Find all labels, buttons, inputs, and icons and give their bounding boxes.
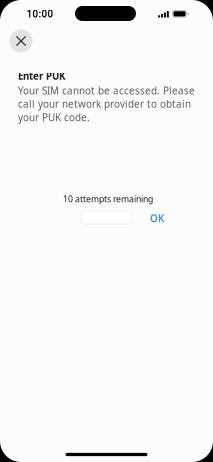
staticText: OK	[150, 212, 164, 225]
staticText: 10 attempts remaining	[63, 193, 153, 205]
button[interactable]: Close	[9, 29, 32, 52]
button[interactable]: OK	[145, 211, 169, 225]
staticText: Your SIM cannot be accessed. Please call…	[18, 84, 195, 124]
staticText: Enter PUK	[18, 69, 65, 83]
staticText: 10:00	[26, 7, 53, 20]
